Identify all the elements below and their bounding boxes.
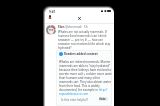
staticText: hydrated? bbox=[58, 46, 72, 50]
staticText: Elon @elonmusk · 5h bbox=[58, 25, 88, 29]
button[interactable]: Profile bbox=[48, 15, 52, 19]
staticText: from their food. This is widely bbox=[59, 84, 100, 88]
staticText: documented, for example in http:// bbox=[59, 88, 108, 92]
staticText: because their kidneys have evolved to bbox=[59, 68, 112, 72]
staticText: seawater sea mammals like whale stay bbox=[58, 42, 111, 46]
staticText: 9:41 bbox=[49, 10, 56, 14]
staticText: seawater — just try it! — how can bbox=[58, 38, 103, 42]
button[interactable]: Rate it bbox=[99, 97, 108, 101]
staticText: Whales are not actually mammals. If bbox=[58, 30, 107, 34]
staticText: Is this note helpful? bbox=[61, 98, 88, 102]
staticText: humans (land mammals) can't drink bbox=[58, 34, 107, 38]
button[interactable]: Author avatar bbox=[46, 25, 56, 35]
staticText: Rate it bbox=[99, 97, 108, 101]
staticText: excrete more salt + reclaim more water bbox=[59, 72, 112, 76]
staticText: than humans and many other bbox=[59, 76, 101, 80]
staticText: mammals can. They also obtain water bbox=[59, 80, 112, 84]
button[interactable]: X Home bbox=[76, 15, 83, 22]
staticText: Whales are indeed mammals. Marine bbox=[59, 60, 111, 64]
staticText: Readers added context bbox=[64, 52, 98, 56]
staticText: reputablesource.com bbox=[59, 92, 89, 96]
button[interactable]: Readers added context bbox=[56, 50, 112, 106]
staticText: mammals are able to "stay hydrated" bbox=[59, 64, 111, 68]
